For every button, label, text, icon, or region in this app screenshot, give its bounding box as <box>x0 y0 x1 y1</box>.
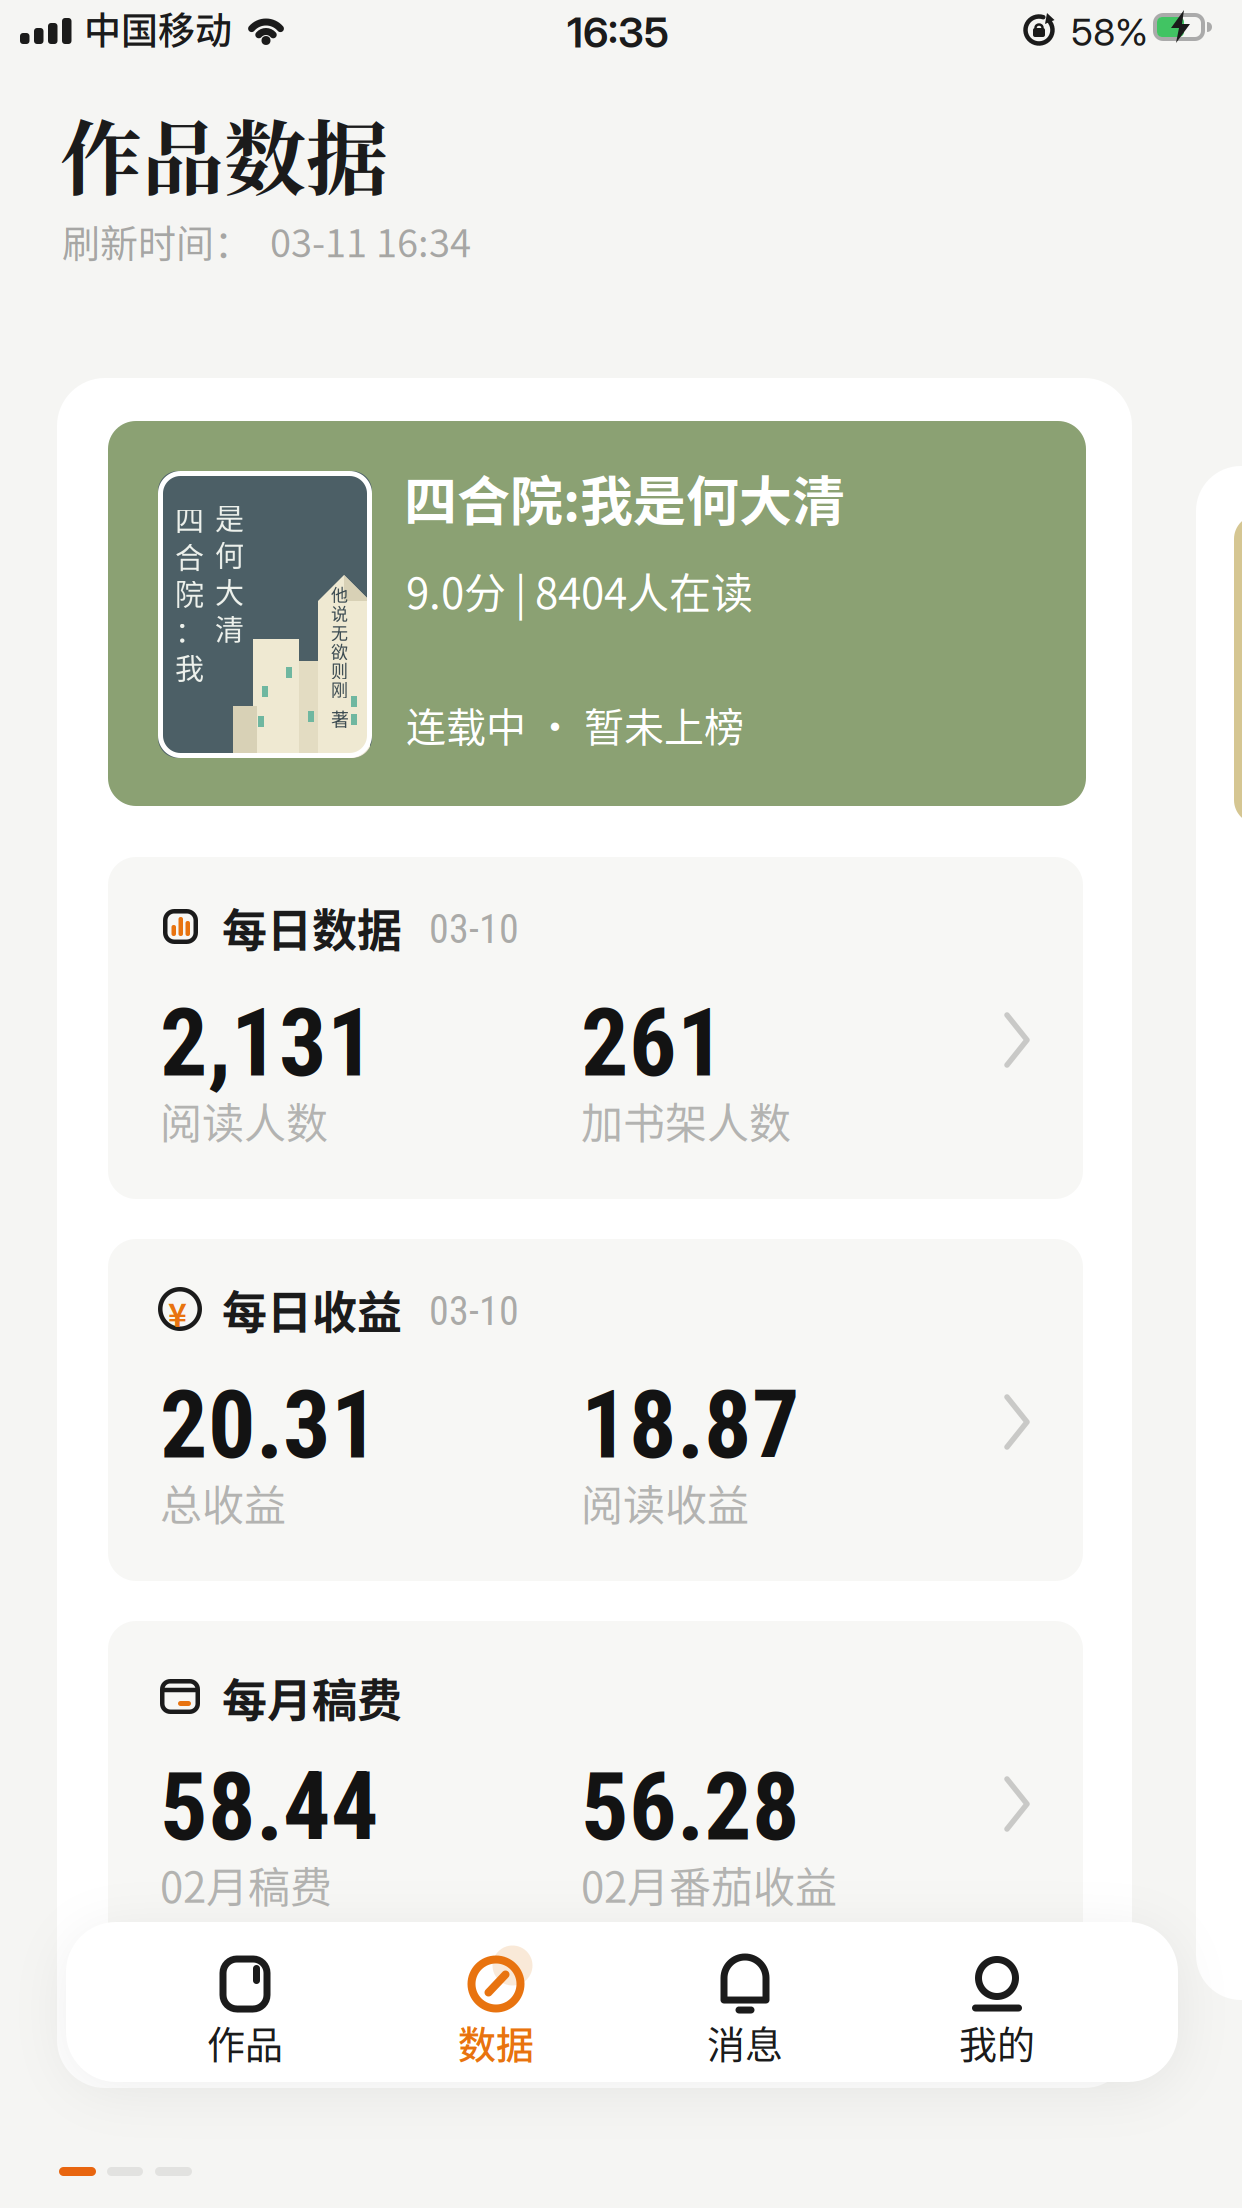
staticText: 58.44 <box>160 1752 379 1862</box>
staticText: 阅读收益 <box>581 1472 749 1533</box>
staticText: 总收益 <box>160 1472 286 1533</box>
staticText: 03-10 <box>429 1288 519 1335</box>
staticText: 02月番茄收益 <box>581 1854 837 1915</box>
staticText: 欲 <box>331 639 348 663</box>
staticText: 大 <box>215 570 244 612</box>
staticText: 连载中 · 暂未上榜 <box>406 696 744 753</box>
staticText: 9.0分 | 8404人在读 <box>406 560 753 621</box>
button[interactable]: ¥ <box>108 1239 1083 1581</box>
staticText: 每月稿费 <box>222 1665 402 1730</box>
staticText: 合 <box>175 535 204 577</box>
staticText: 中国移动 <box>84 1 232 55</box>
staticText: 03-10 <box>429 906 519 953</box>
staticText: 四 <box>175 498 204 540</box>
staticText: 刚 <box>331 677 348 701</box>
staticText: 数据 <box>458 2014 534 2069</box>
staticText: 20.31 <box>160 1370 379 1480</box>
staticText: 清 <box>215 607 244 649</box>
button[interactable]: 每月稿费 <box>108 1621 1083 1963</box>
staticText: 他 <box>331 582 348 606</box>
button[interactable]: 消息 <box>670 1954 820 2070</box>
button[interactable]: 我的 <box>922 1954 1072 2070</box>
staticText: 院 <box>175 572 204 614</box>
staticText: 作品 <box>207 2014 283 2069</box>
staticText: 56.28 <box>581 1752 800 1862</box>
staticText: 四合院:我是何大清 <box>404 460 845 536</box>
button[interactable]: 作品 <box>170 1954 320 2070</box>
staticText: ： <box>175 609 204 651</box>
staticText: 2,131 <box>160 988 375 1098</box>
staticText: 16:35 <box>567 7 669 58</box>
staticText: 我的 <box>959 2014 1035 2069</box>
staticText: 说 <box>331 601 348 625</box>
staticText: 261 <box>581 988 725 1098</box>
staticText: 每日收益 <box>222 1277 402 1342</box>
staticText: ¥ <box>168 1290 187 1336</box>
staticText: 则 <box>331 658 348 682</box>
staticText: 刷新时间： 03-11 16:34 <box>62 213 471 268</box>
button[interactable]: 每日数据 <box>108 857 1083 1199</box>
staticText: 02月稿费 <box>160 1854 332 1915</box>
staticText: 是 <box>215 496 244 538</box>
staticText: 无 <box>331 620 348 644</box>
staticText: 作品数据 <box>60 94 388 212</box>
staticText: 消息 <box>707 2014 783 2069</box>
button[interactable]: 数据 <box>421 1954 571 2070</box>
staticText: 我 <box>175 646 204 688</box>
staticText: 每日数据 <box>222 895 402 960</box>
staticText: 何 <box>215 533 244 575</box>
staticText: 著 <box>331 705 349 731</box>
staticText: 阅读人数 <box>160 1090 328 1151</box>
staticText: 18.87 <box>581 1370 800 1480</box>
button[interactable]: 四 <box>108 421 1086 806</box>
staticText: 加书架人数 <box>581 1090 791 1151</box>
staticText: 58% <box>1071 9 1148 55</box>
